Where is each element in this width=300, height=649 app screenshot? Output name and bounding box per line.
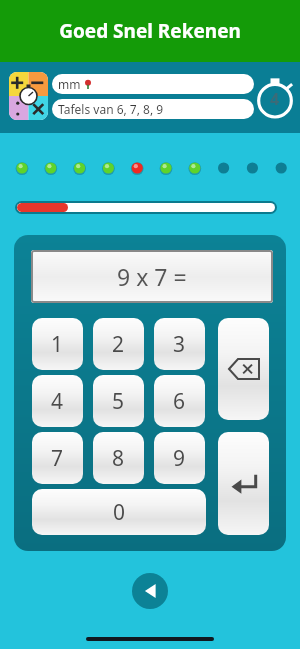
- staticText: 6: [173, 387, 186, 416]
- button[interactable]: 6: [154, 375, 205, 427]
- staticText: 1: [51, 330, 64, 359]
- button[interactable]: Back: [132, 573, 168, 609]
- staticText: 4: [51, 387, 64, 416]
- button[interactable]: App icon: [9, 72, 48, 120]
- staticText: 9 x 7 =: [117, 261, 187, 292]
- staticText: 8: [112, 444, 125, 473]
- staticText: Tafels van 6, 7, 8, 9: [58, 101, 164, 117]
- button[interactable]: 0: [32, 489, 206, 535]
- button[interactable]: 9: [154, 432, 205, 484]
- button[interactable]: 3: [154, 318, 205, 370]
- staticText: 5: [112, 387, 125, 416]
- button[interactable]: 7: [32, 432, 83, 484]
- staticText: 9: [173, 444, 186, 473]
- button[interactable]: 1: [32, 318, 83, 370]
- button[interactable]: Timer: [258, 74, 292, 120]
- button[interactable]: 5: [93, 375, 144, 427]
- button[interactable]: Backspace: [218, 318, 269, 420]
- staticText: 4: [270, 88, 280, 110]
- button[interactable]: Tafels van 6, 7, 8, 9: [52, 99, 254, 119]
- staticText: 3: [173, 330, 186, 359]
- button[interactable]: 2: [93, 318, 144, 370]
- button[interactable]: Enter: [218, 432, 269, 535]
- staticText: 7: [51, 444, 64, 473]
- button[interactable]: mm: [52, 74, 254, 94]
- staticText: 0: [113, 498, 126, 527]
- staticText: Goed Snel Rekenen: [59, 18, 241, 44]
- staticText: 2: [112, 330, 125, 359]
- button[interactable]: 4: [32, 375, 83, 427]
- button[interactable]: 8: [93, 432, 144, 484]
- staticText: mm: [58, 76, 81, 92]
